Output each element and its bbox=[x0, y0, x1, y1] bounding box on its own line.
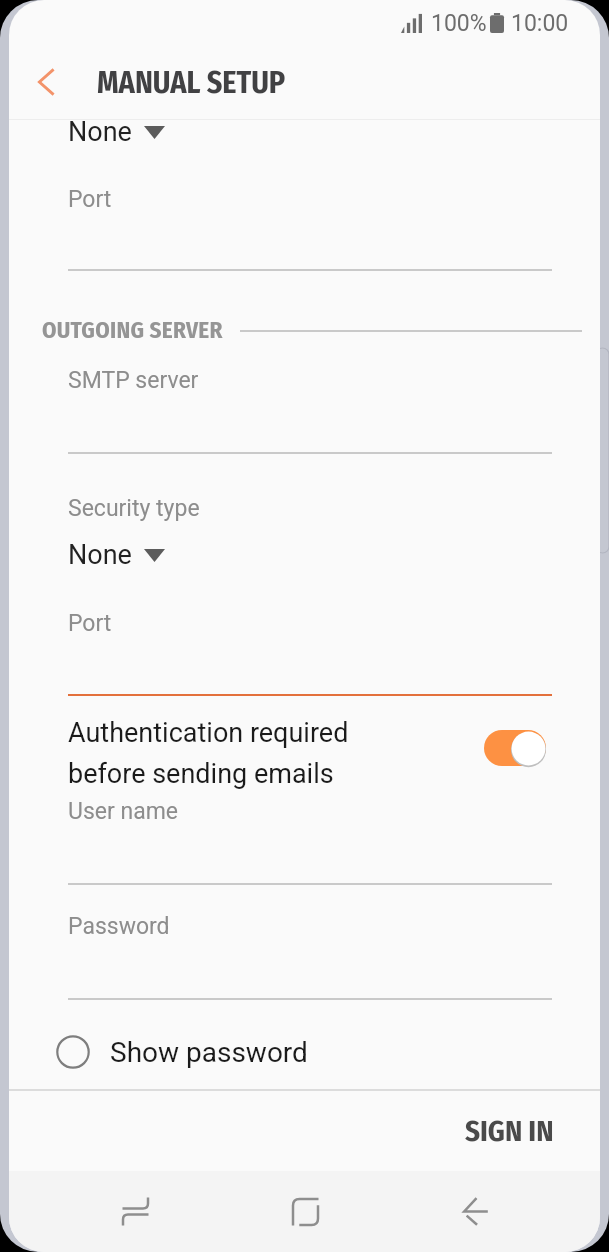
button[interactable]: Recent apps bbox=[95, 1171, 175, 1252]
staticText: None bbox=[68, 116, 132, 148]
button[interactable]: Authentication required before sending e… bbox=[68, 717, 428, 790]
staticText: None bbox=[68, 539, 132, 571]
staticText: SMTP server bbox=[68, 367, 199, 394]
button[interactable]: None bbox=[68, 535, 165, 575]
staticText: Show password bbox=[110, 1036, 308, 1069]
staticText: Port bbox=[68, 186, 112, 213]
staticText: Authentication required before sending e… bbox=[68, 717, 349, 790]
button[interactable]: Authentication required toggle bbox=[484, 730, 546, 766]
button[interactable]: SIGN IN bbox=[455, 1102, 564, 1161]
staticText: Security type bbox=[68, 495, 200, 522]
button[interactable]: Navigate up bbox=[15, 45, 77, 118]
staticText: 100% bbox=[431, 10, 487, 37]
staticText: Password bbox=[68, 913, 170, 940]
button[interactable]: Back bbox=[436, 1171, 516, 1252]
button[interactable]: None bbox=[68, 112, 165, 152]
staticText: Port bbox=[68, 610, 112, 637]
staticText: OUTGOING SERVER bbox=[42, 316, 223, 344]
staticText: SIGN IN bbox=[465, 1114, 554, 1149]
staticText: User name bbox=[68, 798, 179, 825]
staticText: 10:00 bbox=[511, 10, 569, 37]
button[interactable]: Home bbox=[265, 1171, 345, 1252]
staticText: MANUAL SETUP bbox=[97, 65, 286, 101]
button[interactable]: Show password bbox=[9, 1022, 600, 1082]
